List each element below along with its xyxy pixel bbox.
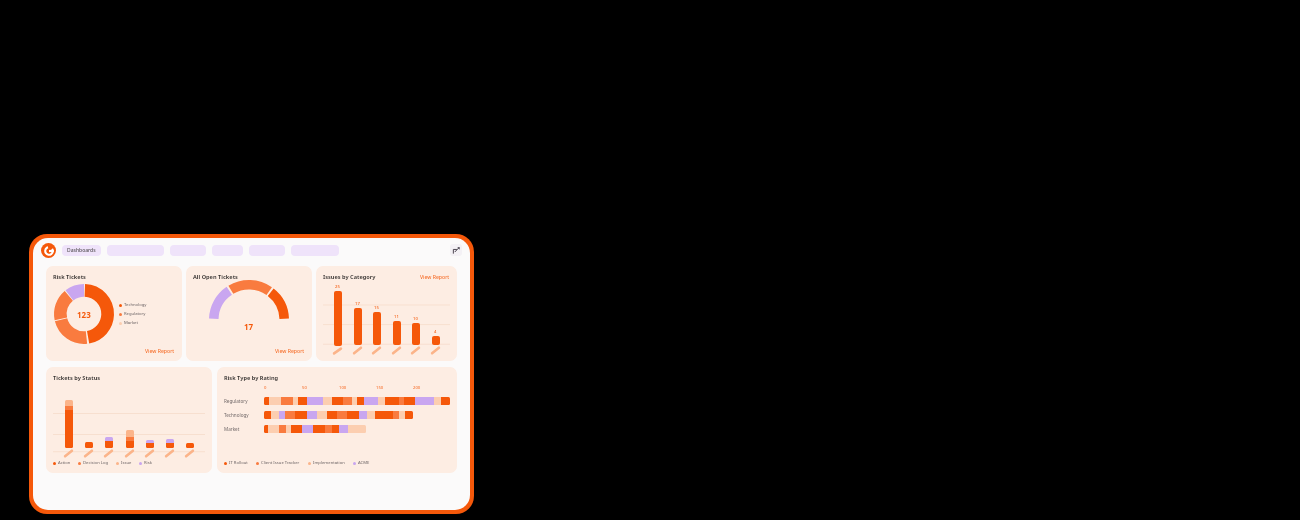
button[interactable]: Risk Type by Rating	[217, 367, 457, 473]
staticText: 25	[335, 284, 340, 290]
button[interactable]: View Report	[145, 347, 175, 354]
staticText: Issues by Category	[323, 273, 376, 281]
staticText: IT Rollout	[229, 460, 248, 466]
button[interactable]: Nav item	[212, 245, 243, 256]
button[interactable]: Decision Log	[78, 460, 109, 466]
staticText: 15	[374, 305, 379, 311]
staticText: Market	[224, 426, 240, 432]
staticText: 11	[394, 314, 399, 320]
staticText: Tickets by Status	[53, 374, 101, 382]
button[interactable]: Risk	[139, 460, 152, 466]
button[interactable]: Action	[53, 460, 71, 466]
staticText: 10	[413, 316, 418, 322]
button[interactable]: Dashboards	[62, 245, 101, 256]
staticText: Technology	[224, 412, 249, 418]
staticText: ACME	[358, 460, 370, 466]
staticText: 150	[376, 385, 384, 391]
button[interactable]: Tickets by Status	[46, 367, 212, 473]
button[interactable]: Edit	[450, 244, 462, 256]
button[interactable]: Implementation	[308, 460, 345, 466]
button[interactable]: View Report	[420, 273, 450, 280]
staticText: 17	[355, 301, 360, 307]
staticText: 0	[264, 385, 267, 391]
button[interactable]: View Report	[275, 347, 305, 354]
button[interactable]: Logo	[41, 243, 56, 258]
staticText: 123	[77, 309, 91, 320]
staticText: View Report	[420, 273, 450, 280]
button[interactable]: Risk Tickets	[46, 266, 182, 361]
button[interactable]: Issue	[116, 460, 132, 466]
button[interactable]: ACME	[353, 460, 370, 466]
staticText: 4	[434, 329, 437, 335]
staticText: Decision Log	[83, 460, 109, 466]
staticText: Risk Tickets	[53, 273, 86, 281]
staticText: Regulatory	[224, 398, 248, 404]
button[interactable]: Market	[119, 320, 138, 326]
button[interactable]: Regulatory	[119, 311, 146, 317]
staticText: Risk	[144, 460, 152, 466]
staticText: Technology	[124, 302, 147, 308]
staticText: Client Issue Tracker	[261, 460, 300, 466]
staticText: Implementation	[313, 460, 345, 466]
button[interactable]: Client Issue Tracker	[256, 460, 300, 466]
staticText: 200	[413, 385, 421, 391]
staticText: 100	[339, 385, 347, 391]
staticText: Regulatory	[124, 311, 146, 317]
button[interactable]: IT Rollout	[224, 460, 248, 466]
staticText: 50	[302, 385, 307, 391]
staticText: Market	[124, 320, 138, 326]
staticText: Issue	[121, 460, 132, 466]
button[interactable]: All Open Tickets	[186, 266, 312, 361]
staticText: Risk Type by Rating	[224, 374, 279, 382]
button[interactable]: Nav item	[170, 245, 206, 256]
staticText: 17	[244, 321, 254, 332]
button[interactable]: Technology	[119, 302, 147, 308]
staticText: View Report	[275, 347, 305, 354]
button[interactable]: Issues by Category	[316, 266, 457, 361]
staticText: Action	[58, 460, 71, 466]
button[interactable]: Nav item	[249, 245, 285, 256]
staticText: View Report	[145, 347, 175, 354]
staticText: Dashboards	[67, 247, 96, 254]
staticText: All Open Tickets	[193, 273, 238, 281]
